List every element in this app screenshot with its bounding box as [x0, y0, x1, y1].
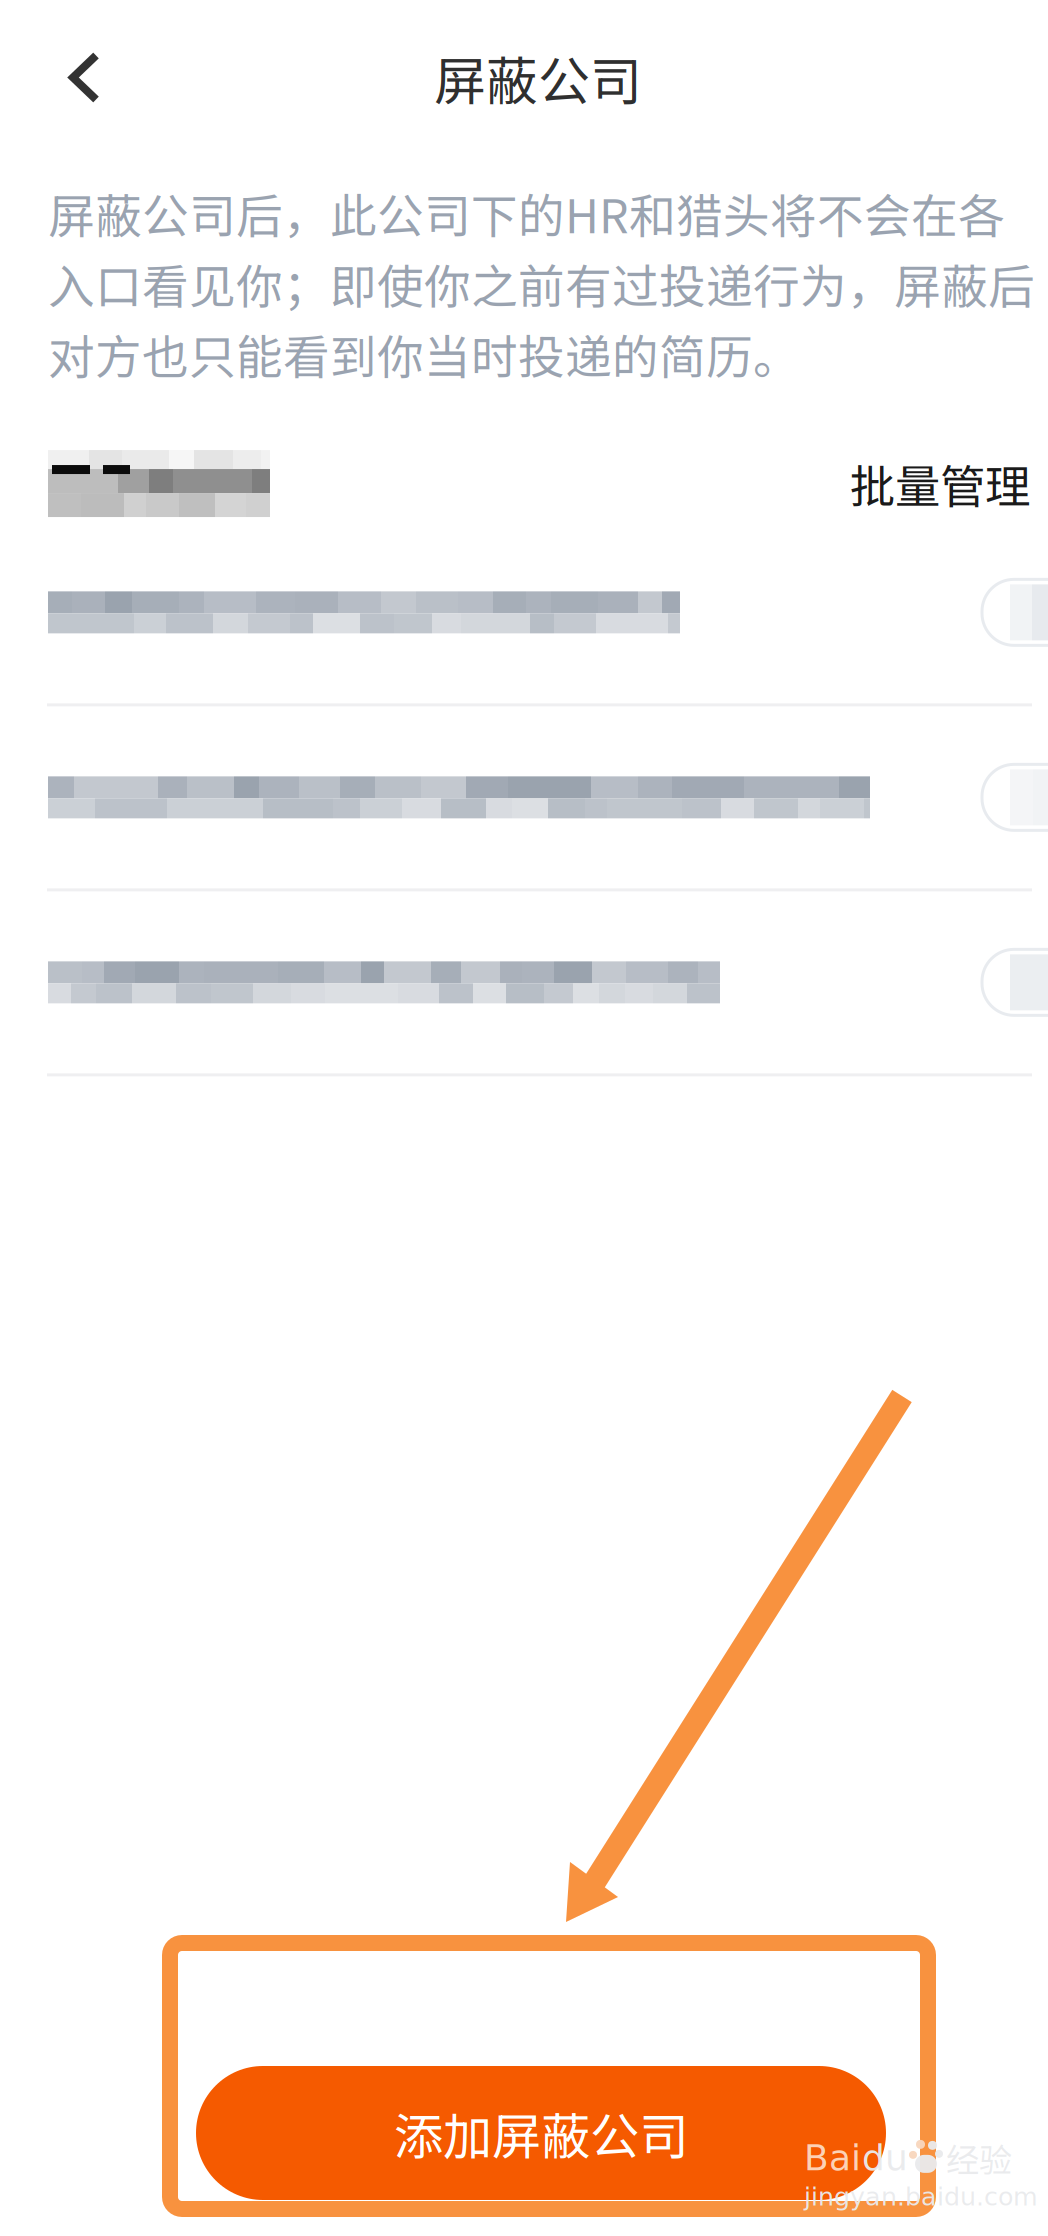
button[interactable]	[0, 521, 1048, 706]
button[interactable]: Back	[0, 19, 135, 135]
staticText: 添加屏蔽公司	[394, 2097, 688, 2169]
staticText: 屏蔽公司	[434, 40, 642, 115]
staticText: 屏蔽公司后，此公司下的HR和猎头将不会在各入口看见你；即使你之前有过投递行为，屏…	[48, 179, 1035, 388]
staticText: 经验	[946, 2134, 1012, 2182]
button[interactable]: 添加屏蔽公司	[179, 2066, 869, 2200]
staticText: du	[862, 2137, 908, 2179]
staticText: 批量管理	[850, 451, 1030, 516]
button[interactable]	[0, 891, 1048, 1076]
staticText: jingyan.baidu.com	[804, 2182, 1038, 2211]
button[interactable]	[0, 706, 1048, 891]
button[interactable]: 批量管理	[850, 439, 1030, 528]
staticText: Bai	[804, 2137, 861, 2179]
